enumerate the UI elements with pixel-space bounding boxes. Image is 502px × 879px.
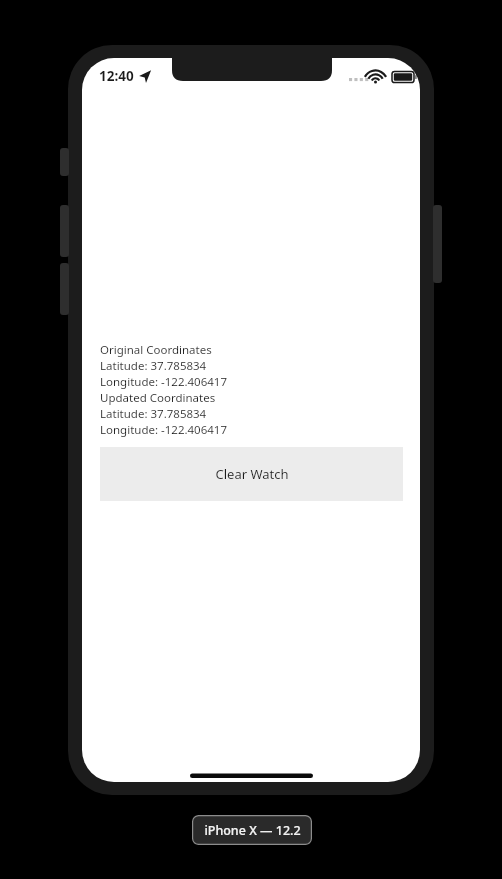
staticText: Longitude: -122.406417 — [100, 422, 228, 438]
staticText: 12:40 — [99, 67, 134, 85]
staticText: Longitude: -122.406417 — [100, 374, 228, 390]
staticText: Updated Coordinates — [100, 390, 216, 406]
button[interactable]: Device iPhone X iOS 12.2 — [192, 815, 312, 845]
staticText: Latitude: 37.785834 — [100, 406, 207, 422]
staticText: iPhone X — 12.2 — [204, 822, 301, 839]
staticText: Original Coordinates — [100, 342, 212, 358]
staticText: Clear Watch — [215, 465, 289, 483]
staticText: Latitude: 37.785834 — [100, 358, 207, 374]
button[interactable]: Clear Watch — [100, 447, 403, 501]
